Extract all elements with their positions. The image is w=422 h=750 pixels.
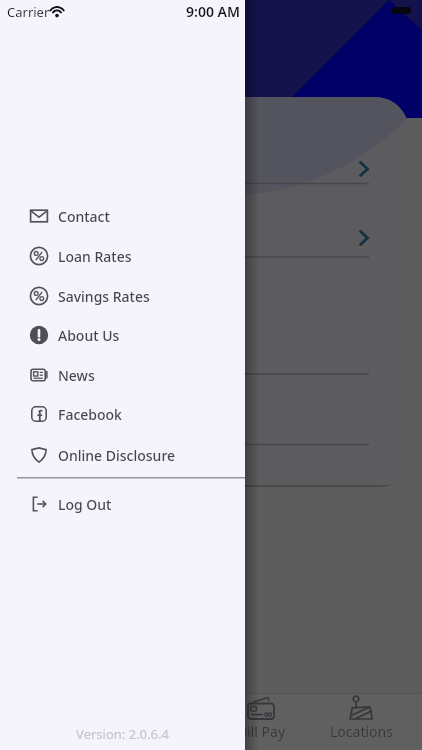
button[interactable]: Contact	[16, 196, 238, 236]
staticText: Locations	[330, 722, 393, 741]
staticText: About Us	[58, 326, 120, 345]
button[interactable]: Savings Rates	[16, 276, 238, 316]
button[interactable]: Loan Rates	[16, 236, 238, 276]
staticText: Bill Pay	[238, 722, 286, 741]
button[interactable]: Locations	[326, 694, 396, 748]
button[interactable]	[252, 217, 392, 262]
staticText: Version: 2.0.6.4	[0, 725, 245, 743]
staticText: Carrier	[7, 3, 50, 21]
button[interactable]	[252, 147, 392, 192]
staticText: Log Out	[58, 495, 112, 514]
button[interactable]: About Us	[16, 315, 238, 355]
button[interactable]: Online Disclosure	[16, 435, 238, 475]
staticText: Savings Rates	[58, 287, 150, 306]
button[interactable]: News	[16, 355, 238, 395]
staticText: Contact	[58, 207, 110, 226]
button[interactable]: Log Out	[16, 484, 238, 524]
button[interactable]: Bill Pay	[231, 694, 293, 748]
staticText: Facebook	[58, 405, 122, 424]
staticText: Loan Rates	[58, 247, 132, 266]
staticText: News	[58, 366, 95, 385]
staticText: Online Disclosure	[58, 446, 176, 465]
button[interactable]: Facebook	[16, 394, 238, 434]
staticText: 9:00 AM	[180, 2, 240, 21]
